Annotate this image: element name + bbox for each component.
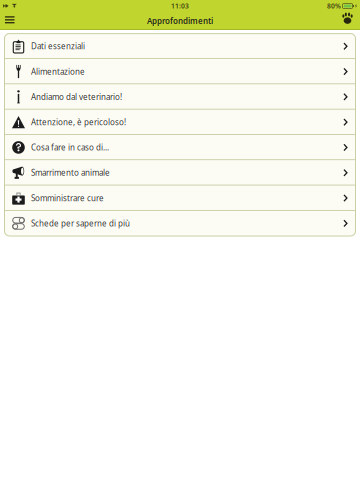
staticText: Dati essenziali	[31, 41, 85, 51]
button[interactable]: Attenzione, è pericoloso!	[4, 109, 355, 135]
button[interactable]: Profilo animale	[340, 12, 360, 30]
staticText: Alimentazione	[31, 66, 85, 77]
staticText: Approfondimenti	[147, 16, 213, 26]
staticText: Smarrimento animale	[31, 167, 110, 178]
staticText: 80%	[327, 2, 341, 10]
staticText: Cosa fare in caso di...	[31, 142, 109, 153]
button[interactable]: Andiamo dal veterinario!	[4, 84, 355, 109]
staticText: Andiamo dal veterinario!	[31, 91, 122, 102]
button[interactable]: Cosa fare in caso di...	[4, 135, 355, 160]
button[interactable]: Menu	[0, 12, 19, 30]
button[interactable]: Smarrimento animale	[4, 160, 355, 185]
staticText: 11:03	[171, 2, 189, 10]
button[interactable]: Somministrare cure	[4, 185, 355, 211]
button[interactable]: Alimentazione	[4, 59, 355, 84]
button[interactable]: Dati essenziali	[4, 34, 355, 59]
button[interactable]: Schede per saperne di più	[4, 211, 355, 236]
staticText: Attenzione, è pericoloso!	[31, 117, 126, 127]
staticText: Schede per saperne di più	[31, 218, 130, 229]
staticText: Somministrare cure	[31, 193, 104, 203]
